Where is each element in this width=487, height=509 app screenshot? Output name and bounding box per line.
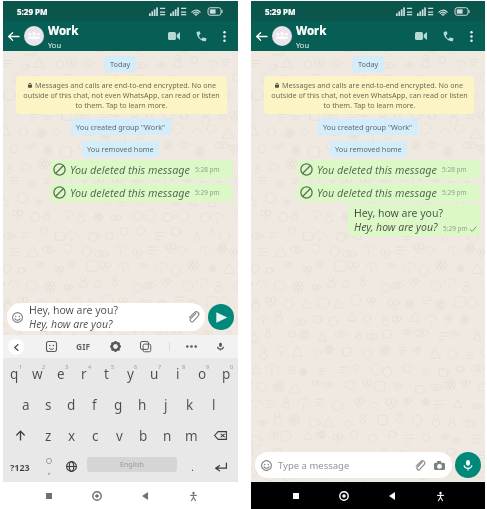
staticText: Work xyxy=(48,23,79,39)
button[interactable]: Enter xyxy=(204,451,238,482)
button[interactable]: Call xyxy=(436,24,460,48)
button[interactable]: Back xyxy=(252,27,271,46)
button[interactable]: Messages and calls are end-to-end encryp… xyxy=(264,76,474,114)
button[interactable]: b xyxy=(131,420,155,451)
button[interactable]: Back xyxy=(4,27,23,46)
button[interactable]: Group photo xyxy=(24,26,44,46)
button[interactable]: j xyxy=(154,389,178,420)
staticText: d xyxy=(67,396,76,414)
staticText: Hey, how are you? xyxy=(354,206,444,220)
button[interactable]: More xyxy=(186,345,197,348)
button[interactable]: Call xyxy=(189,24,213,48)
button[interactable]: You deleted this message xyxy=(50,160,233,179)
staticText: h xyxy=(138,396,147,414)
button[interactable]: i xyxy=(166,358,190,389)
button[interactable]: Back xyxy=(381,485,403,507)
button[interactable]: Record voice message xyxy=(455,452,481,478)
button[interactable]: Video call xyxy=(409,24,433,48)
staticText: 2 xyxy=(42,363,46,370)
button[interactable]: n xyxy=(155,420,179,451)
staticText: You removed home xyxy=(87,144,154,154)
button[interactable]: Stickers xyxy=(46,341,57,352)
button[interactable]: Accessibility xyxy=(429,485,451,507)
staticText: 5:29 PM xyxy=(17,6,48,17)
staticText: m xyxy=(185,427,198,445)
staticText: Messages and calls are end-to-end encryp… xyxy=(35,80,216,90)
button[interactable]: . xyxy=(181,451,204,482)
staticText: 5 xyxy=(111,363,115,370)
button[interactable]: Close keyboard toolbar xyxy=(8,339,24,355)
button[interactable]: Change language xyxy=(60,451,83,482)
button[interactable]: t xyxy=(95,358,118,389)
button[interactable]: z xyxy=(37,420,60,451)
button[interactable]: Comma and emoji xyxy=(37,451,60,482)
staticText: f xyxy=(92,396,97,414)
button[interactable]: Messages and calls are end-to-end encryp… xyxy=(16,76,227,114)
button[interactable]: v xyxy=(107,420,131,451)
button[interactable]: Home xyxy=(333,485,355,507)
button[interactable]: Video call xyxy=(162,24,186,48)
staticText: 5:29 pm xyxy=(443,224,468,233)
button[interactable]: y xyxy=(118,358,142,389)
staticText: You created group "Work" xyxy=(76,122,166,132)
button[interactable]: Group photo xyxy=(272,26,292,46)
staticText: i xyxy=(176,365,180,383)
button[interactable]: Recents xyxy=(285,485,307,507)
button[interactable]: You deleted this message xyxy=(297,160,480,179)
button[interactable]: s xyxy=(37,389,60,420)
button[interactable]: q xyxy=(3,358,26,389)
staticText: 4 xyxy=(88,363,92,370)
button[interactable]: Type a message xyxy=(255,452,452,478)
button[interactable]: Voice input xyxy=(216,342,225,351)
button[interactable]: Back xyxy=(134,485,156,507)
button[interactable]: o xyxy=(190,358,214,389)
button[interactable]: Hey, how are you? xyxy=(348,204,480,236)
button[interactable]: ?123 xyxy=(3,451,37,482)
button[interactable]: x xyxy=(60,420,83,451)
button[interactable]: w xyxy=(26,358,49,389)
button[interactable]: Accessibility xyxy=(182,485,204,507)
button[interactable]: k xyxy=(178,389,202,420)
staticText: r xyxy=(81,365,87,383)
button[interactable]: Home xyxy=(86,485,108,507)
button[interactable]: Shift xyxy=(3,420,37,451)
staticText: . xyxy=(191,459,194,474)
staticText: to them. Tap to learn more. xyxy=(75,100,168,110)
staticText: You xyxy=(48,40,62,50)
staticText: e xyxy=(57,365,65,383)
staticText: Work xyxy=(296,23,327,39)
button[interactable]: More options xyxy=(215,27,233,45)
staticText: Today xyxy=(110,59,131,69)
button[interactable]: Translate xyxy=(140,341,151,352)
button[interactable]: Recents xyxy=(38,485,60,507)
button[interactable]: d xyxy=(60,389,83,420)
staticText: q xyxy=(10,365,19,383)
staticText: 7 xyxy=(158,363,162,370)
staticText: 5:29 pm xyxy=(442,188,467,197)
staticText: n xyxy=(163,427,172,445)
staticText: outside of this chat, not even WhatsApp,… xyxy=(23,90,220,100)
button[interactable]: h xyxy=(130,389,154,420)
button[interactable]: a xyxy=(14,389,37,420)
button[interactable]: English xyxy=(87,457,177,472)
button[interactable]: You deleted this message xyxy=(297,183,480,202)
button[interactable]: f xyxy=(83,389,106,420)
staticText: 6 xyxy=(134,363,138,370)
button[interactable]: Settings xyxy=(110,341,121,352)
button[interactable]: Hey, how are you? xyxy=(7,303,205,331)
button[interactable]: Send xyxy=(208,304,234,330)
button[interactable]: g xyxy=(106,389,130,420)
button[interactable]: r xyxy=(72,358,95,389)
button[interactable]: You deleted this message xyxy=(50,183,233,202)
button[interactable]: c xyxy=(83,420,107,451)
staticText: w xyxy=(32,365,43,383)
button[interactable]: u xyxy=(142,358,166,389)
button[interactable]: e xyxy=(49,358,72,389)
staticText: 3 xyxy=(65,363,69,370)
button[interactable]: More options xyxy=(462,27,480,45)
button[interactable]: p xyxy=(214,358,238,389)
button[interactable]: Backspace xyxy=(203,420,238,451)
staticText: outside of this chat, not even WhatsApp,… xyxy=(271,90,468,100)
button[interactable]: m xyxy=(179,420,203,451)
button[interactable]: l xyxy=(202,389,226,420)
